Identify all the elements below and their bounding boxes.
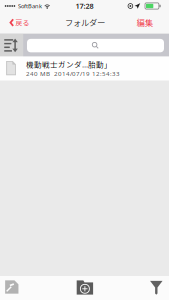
staticText: 編集 <box>137 16 153 28</box>
button[interactable]: Filter <box>136 276 169 300</box>
staticText: フォルダー <box>65 16 105 28</box>
button[interactable]: New folder <box>65 275 105 299</box>
staticText: 240 MB 2014/07/19 12:54:33 <box>26 69 120 78</box>
button[interactable]: Sort <box>0 35 22 55</box>
button[interactable]: 機動戦士ガンダ...胎動」 <box>0 56 169 80</box>
staticText: 17:28 <box>75 1 93 11</box>
staticText: 機動戦士ガンダ...胎動」 <box>26 59 112 70</box>
button[interactable]: 編集 <box>132 12 158 32</box>
staticText: 戻る <box>15 18 29 28</box>
button[interactable]: 戻る <box>0 12 30 32</box>
button[interactable]: Search <box>27 39 164 52</box>
staticText: SoftBank <box>18 2 42 10</box>
button[interactable]: Document tools <box>0 275 32 299</box>
